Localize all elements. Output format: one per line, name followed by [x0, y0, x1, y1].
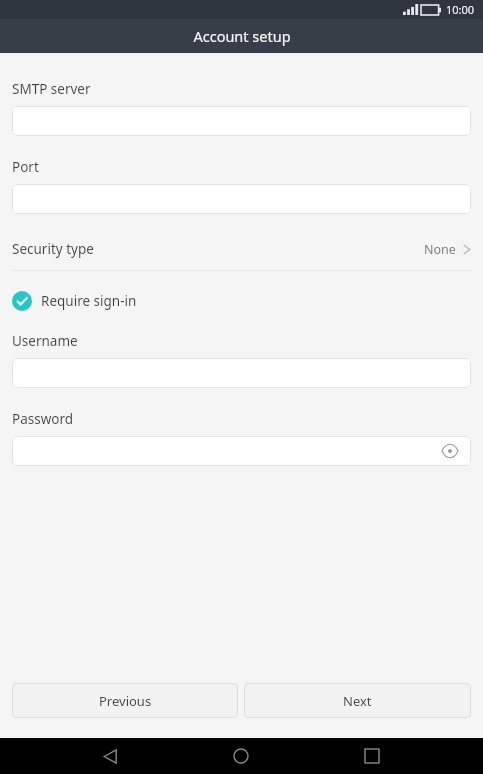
button[interactable]: Next — [244, 683, 471, 718]
button[interactable] — [12, 184, 471, 214]
button[interactable]: Previous — [12, 683, 238, 718]
button[interactable]: Recent apps — [352, 738, 392, 774]
staticText: None — [424, 241, 456, 258]
button[interactable] — [12, 106, 471, 136]
staticText: Port — [12, 158, 39, 176]
staticText: Username — [12, 332, 78, 350]
button[interactable]: Require sign-in — [12, 289, 471, 313]
button[interactable]: Show password — [439, 440, 461, 462]
staticText: Require sign-in — [41, 292, 137, 310]
button[interactable] — [12, 358, 471, 388]
staticText: Account setup — [193, 26, 291, 46]
staticText: 10:00 — [446, 2, 475, 17]
staticText: Password — [12, 410, 74, 428]
button[interactable]: Home — [221, 738, 261, 774]
staticText: SMTP server — [12, 80, 91, 98]
button[interactable]: Show password — [12, 436, 471, 466]
staticText: Previous — [99, 692, 152, 710]
button[interactable]: Security type — [12, 236, 471, 262]
staticText: Next — [343, 692, 372, 710]
button[interactable]: Back — [90, 738, 130, 774]
staticText: Security type — [12, 240, 424, 258]
